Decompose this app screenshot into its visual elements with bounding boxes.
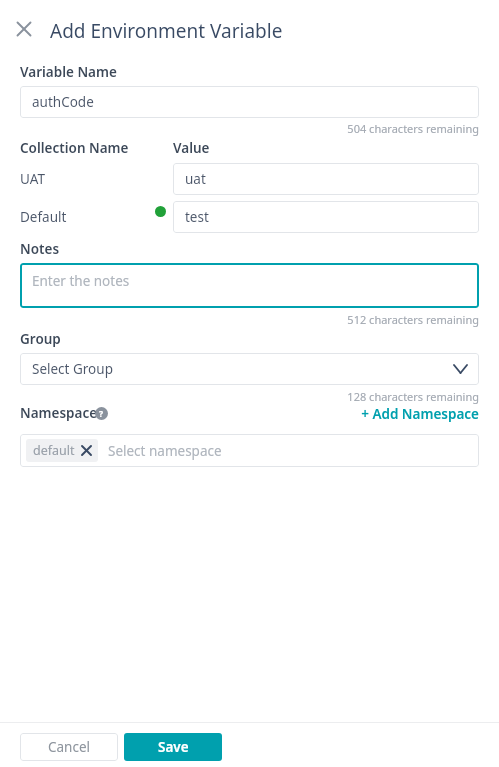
staticText: default [33, 442, 75, 459]
staticText: test [185, 208, 209, 226]
staticText: 512 characters remaining [0, 312, 479, 327]
staticText: Select Group [32, 360, 113, 378]
staticText: Select namespace [108, 442, 222, 460]
staticText: Add Environment Variable [50, 18, 283, 44]
staticText: UAT [20, 170, 45, 188]
staticText: Group [20, 330, 61, 348]
staticText: Save [158, 738, 189, 756]
staticText: 504 characters remaining [0, 121, 479, 136]
button[interactable]: authCode [20, 86, 479, 118]
button[interactable]: default [26, 439, 98, 462]
button[interactable]: test [173, 201, 479, 233]
staticText: uat [185, 170, 206, 188]
staticText: Variable Name [20, 63, 117, 81]
staticText: Collection Name [20, 139, 129, 157]
staticText: Notes [20, 240, 60, 258]
staticText: Enter the notes [32, 272, 130, 290]
button[interactable]: + Add Namespace [0, 405, 479, 423]
staticText: + Add Namespace [0, 405, 479, 423]
staticText: ? [99, 408, 104, 420]
button[interactable]: uat [173, 163, 479, 195]
other: Remove default [82, 446, 91, 455]
staticText: 128 characters remaining [0, 389, 479, 404]
button[interactable]: Save [124, 733, 222, 761]
button[interactable]: Select Group [20, 353, 479, 385]
button[interactable]: Enter the notes [20, 263, 479, 308]
button[interactable]: default [20, 434, 479, 467]
button[interactable]: Cancel [20, 733, 118, 761]
staticText: authCode [32, 93, 94, 111]
staticText: Namespace [20, 404, 98, 422]
staticText: Value [173, 139, 210, 157]
staticText: Cancel [48, 738, 91, 756]
button[interactable]: Close [14, 19, 34, 39]
staticText: Default [20, 208, 67, 226]
button[interactable]: Namespace help [95, 407, 108, 420]
